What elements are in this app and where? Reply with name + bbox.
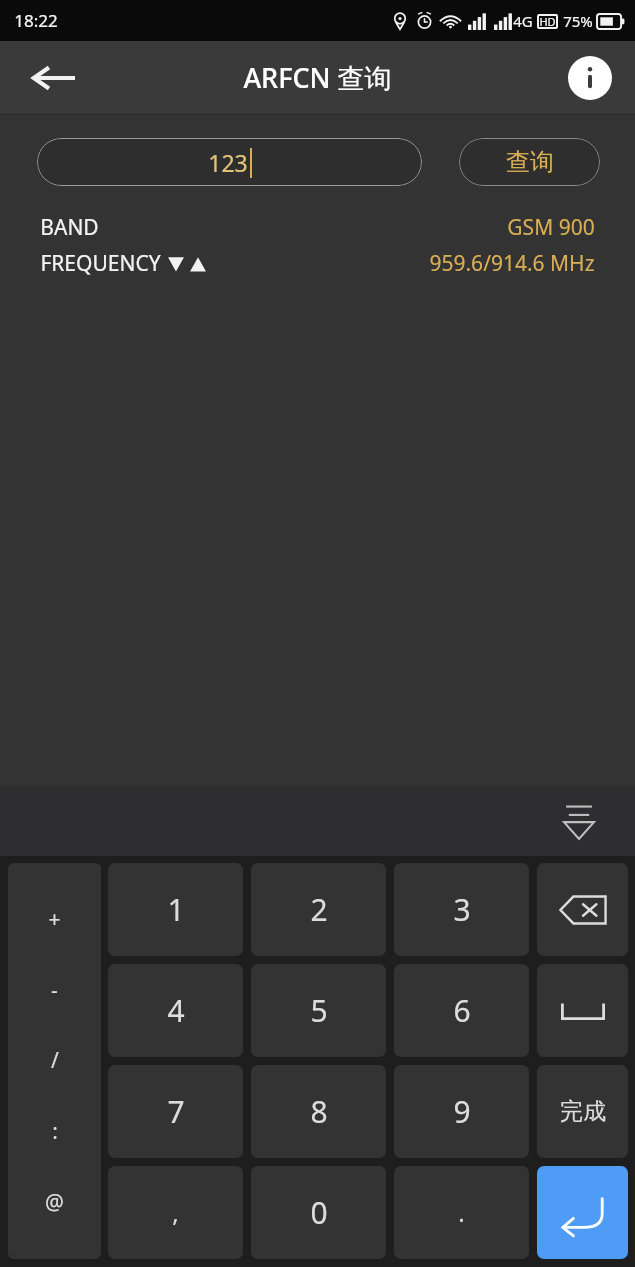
button[interactable]: . bbox=[394, 1166, 529, 1259]
staticText: 0 bbox=[310, 1192, 328, 1233]
staticText: 查询 bbox=[506, 147, 554, 177]
staticText: , bbox=[172, 1196, 179, 1229]
button[interactable]: 123 bbox=[37, 138, 422, 186]
staticText: GSM 900 bbox=[507, 213, 595, 242]
button[interactable]: Space bbox=[537, 964, 628, 1057]
staticText: HD bbox=[539, 14, 556, 29]
staticText: 2 bbox=[310, 889, 328, 930]
staticText: 3 bbox=[453, 889, 471, 930]
staticText: 1 bbox=[167, 889, 185, 930]
staticText: 完成 bbox=[560, 1097, 606, 1126]
staticText: BAND bbox=[40, 213, 99, 242]
staticText: . bbox=[458, 1196, 465, 1229]
button[interactable]: 查询 bbox=[459, 138, 600, 186]
staticText: 7 bbox=[167, 1091, 185, 1132]
staticText: 75% bbox=[563, 11, 593, 31]
staticText: 5 bbox=[310, 990, 328, 1031]
button[interactable]: 完成 bbox=[537, 1065, 628, 1158]
staticText: @ bbox=[45, 1188, 64, 1217]
button[interactable]: 6 bbox=[394, 964, 529, 1057]
staticText: - bbox=[51, 976, 58, 1005]
staticText: + bbox=[48, 905, 61, 934]
button[interactable]: Enter bbox=[537, 1166, 628, 1259]
staticText: 6 bbox=[453, 990, 471, 1031]
button[interactable]: 0 bbox=[251, 1166, 386, 1259]
button[interactable]: 1 bbox=[108, 863, 243, 956]
button[interactable]: 7 bbox=[108, 1065, 243, 1158]
staticText: 9 bbox=[453, 1091, 471, 1132]
button[interactable]: Hide keyboard bbox=[551, 793, 607, 849]
button[interactable]: 9 bbox=[394, 1065, 529, 1158]
button[interactable]: 8 bbox=[251, 1065, 386, 1158]
staticText: 959.6/914.6 MHz bbox=[429, 249, 595, 278]
staticText: 123 bbox=[208, 147, 248, 178]
button[interactable]: 2 bbox=[251, 863, 386, 956]
staticText: 8 bbox=[310, 1091, 328, 1132]
staticText: : bbox=[52, 1117, 58, 1146]
button[interactable]: 3 bbox=[394, 863, 529, 956]
staticText: 4G bbox=[513, 11, 533, 31]
staticText: FREQUENCY bbox=[40, 249, 161, 278]
button[interactable]: Info bbox=[563, 51, 617, 105]
button[interactable]: Backspace bbox=[537, 863, 628, 956]
button[interactable]: , bbox=[108, 1166, 243, 1259]
staticText: 18:22 bbox=[14, 9, 58, 32]
button[interactable]: Back bbox=[18, 48, 90, 108]
button[interactable]: + bbox=[8, 863, 101, 1259]
staticText: 4 bbox=[167, 990, 185, 1031]
button[interactable]: 4 bbox=[108, 964, 243, 1057]
button[interactable]: 5 bbox=[251, 964, 386, 1057]
staticText: / bbox=[51, 1046, 59, 1075]
staticText: ARFCN 查询 bbox=[243, 59, 392, 96]
